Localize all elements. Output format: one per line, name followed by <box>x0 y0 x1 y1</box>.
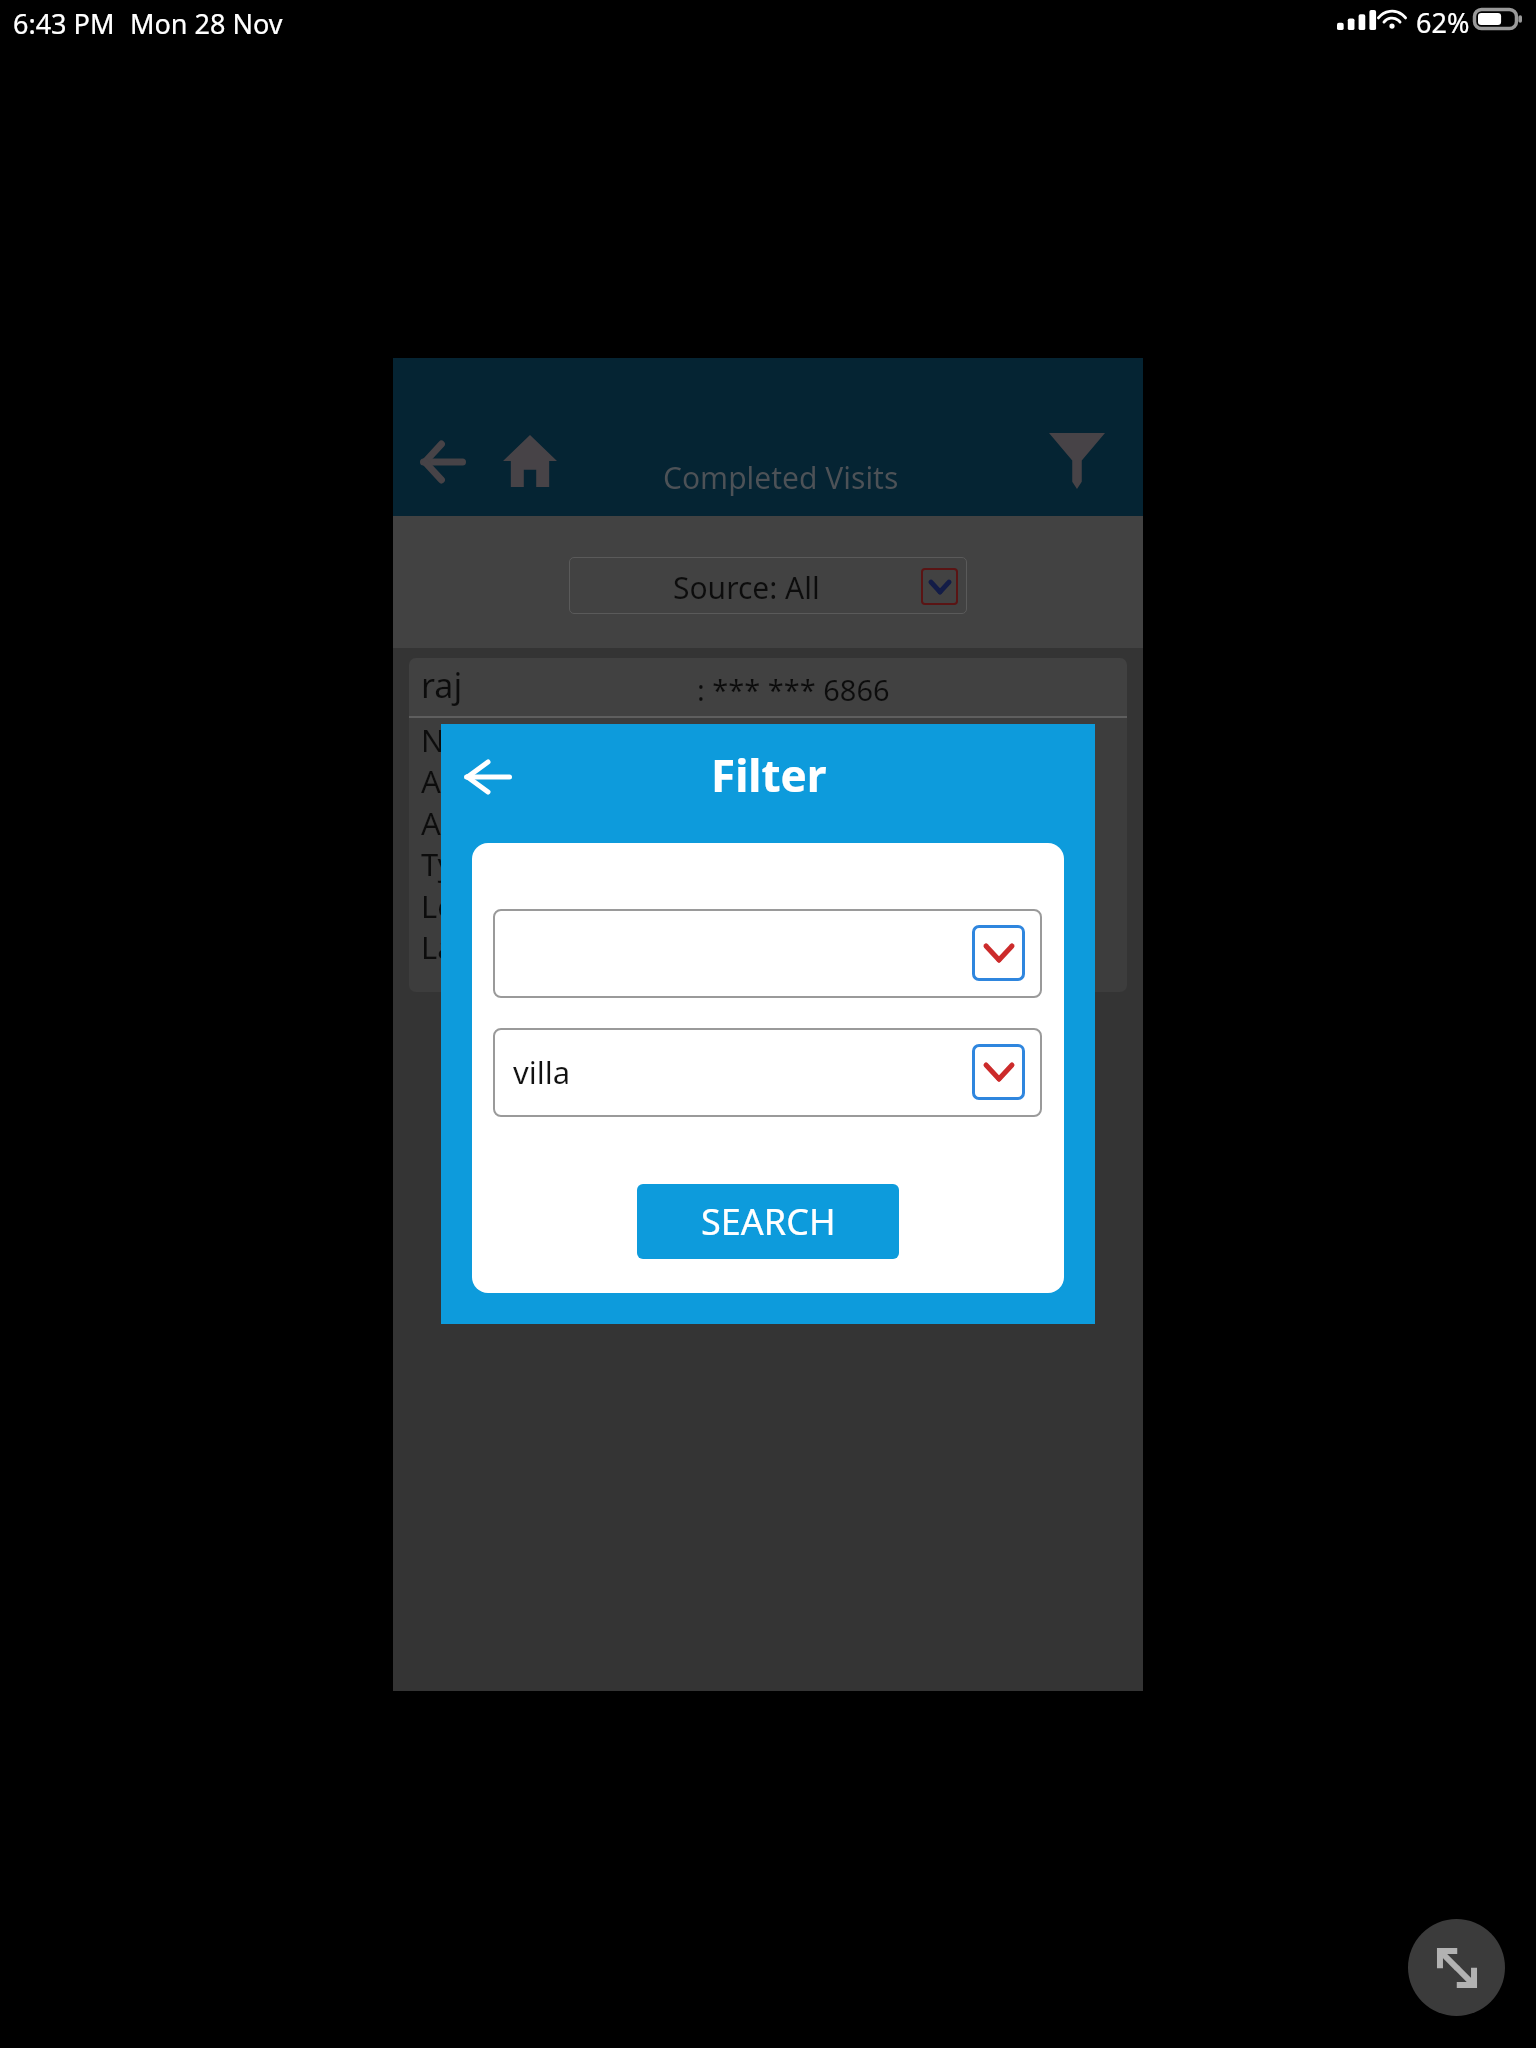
staticText: villa <box>513 1051 571 1093</box>
button[interactable]: villa <box>493 1028 1042 1117</box>
staticText: Area <box>421 802 488 844</box>
button[interactable]: Back <box>414 433 472 491</box>
button[interactable]: Filter <box>1048 432 1106 490</box>
staticText: Completed Visits <box>663 457 899 498</box>
staticText: : *** *** 6866 <box>697 670 890 709</box>
staticText: 62% <box>1416 4 1470 41</box>
staticText: Address <box>421 760 539 802</box>
button[interactable]: SEARCH <box>637 1184 899 1259</box>
staticText: Mon 28 Nov <box>130 5 283 42</box>
staticText: Type <box>421 843 490 885</box>
button[interactable]: Source: All <box>569 557 967 614</box>
staticText: Name <box>421 719 509 761</box>
staticText: 6:43 PM <box>13 5 115 42</box>
staticText: Source: All <box>673 567 820 608</box>
staticText: Lead <box>421 885 492 927</box>
button[interactable]: raj <box>409 658 1127 716</box>
staticText: Last <box>421 926 481 968</box>
button[interactable]: Home <box>501 432 559 490</box>
button[interactable]: Back <box>456 745 520 809</box>
staticText: SEARCH <box>701 1197 836 1246</box>
staticText: Filter <box>711 745 827 805</box>
staticText: raj <box>421 662 463 708</box>
button[interactable]: Expand <box>1408 1919 1505 2016</box>
button[interactable] <box>493 909 1042 998</box>
